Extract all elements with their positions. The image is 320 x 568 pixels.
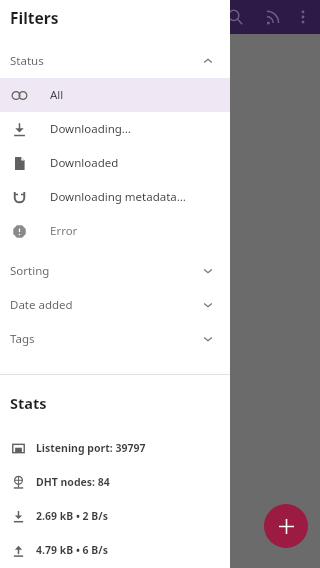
- staticText: Tags: [10, 331, 202, 347]
- staticText: Stats: [10, 393, 47, 413]
- button[interactable]: 4.79 kB • 6 B/s: [0, 533, 230, 567]
- button[interactable]: Tags: [0, 322, 230, 356]
- staticText: 2.69 kB • 2 B/s: [36, 509, 108, 523]
- staticText: Downloading…: [50, 121, 131, 137]
- button[interactable]: RSS feeds: [260, 4, 286, 30]
- button[interactable]: More options: [290, 4, 316, 30]
- button[interactable]: DHT nodes: 84: [0, 465, 230, 499]
- staticText: 4.79 kB • 6 B/s: [36, 543, 108, 557]
- staticText: Listening port: 39797: [36, 441, 146, 455]
- button[interactable]: 2.69 kB • 2 B/s: [0, 499, 230, 533]
- staticText: Error: [50, 223, 78, 239]
- button[interactable]: Listening port: 39797: [0, 431, 230, 465]
- staticText: Status: [10, 53, 202, 69]
- staticText: Downloading metadata…: [50, 189, 186, 205]
- staticText: Downloaded: [50, 155, 119, 171]
- button[interactable]: Downloading metadata…: [0, 180, 230, 214]
- button[interactable]: Date added: [0, 288, 230, 322]
- button[interactable]: Search: [222, 4, 248, 30]
- staticText: All: [50, 87, 64, 103]
- button[interactable]: All: [0, 78, 230, 112]
- button[interactable]: Error: [0, 214, 230, 248]
- staticText: Filters: [10, 7, 59, 28]
- button[interactable]: Add torrent: [264, 504, 308, 548]
- button[interactable]: Downloading…: [0, 112, 230, 146]
- staticText: Date added: [10, 297, 202, 313]
- button[interactable]: Status: [0, 44, 230, 78]
- staticText: DHT nodes: 84: [36, 475, 110, 489]
- staticText: Sorting: [10, 263, 202, 279]
- button[interactable]: Sorting: [0, 254, 230, 288]
- button[interactable]: Downloaded: [0, 146, 230, 180]
